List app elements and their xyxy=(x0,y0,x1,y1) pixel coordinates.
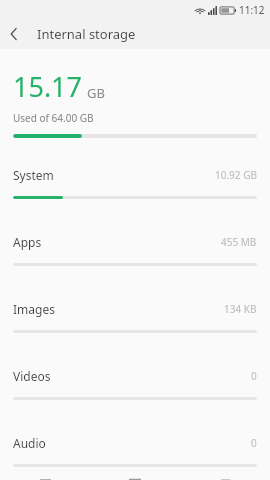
staticText: 134 KB xyxy=(224,302,257,316)
button[interactable]: Images xyxy=(0,286,270,353)
staticText: 10.92 GB xyxy=(215,168,257,182)
staticText: System xyxy=(13,167,54,183)
staticText: Videos xyxy=(13,368,51,384)
staticText: GB xyxy=(87,84,105,102)
staticText: Used of 64.00 GB xyxy=(13,111,94,125)
staticText: 15.17 xyxy=(13,68,83,105)
staticText: Audio xyxy=(13,435,46,451)
staticText: Internal storage xyxy=(37,25,136,43)
staticText: 11:12 xyxy=(239,3,265,17)
staticText: 455 MB xyxy=(221,235,257,249)
staticText: Images xyxy=(13,301,55,317)
button[interactable]: Audio xyxy=(0,420,270,480)
button[interactable]: System xyxy=(0,152,270,219)
button[interactable]: Apps xyxy=(0,219,270,286)
staticText: Apps xyxy=(13,234,42,250)
staticText: 0 xyxy=(251,436,257,450)
button[interactable]: Back xyxy=(0,20,28,48)
button[interactable]: Videos xyxy=(0,353,270,420)
staticText: 0 xyxy=(251,369,257,383)
